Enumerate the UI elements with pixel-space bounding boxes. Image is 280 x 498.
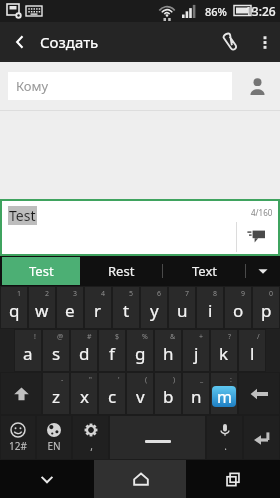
button[interactable]: EN [37, 416, 71, 459]
staticText: + [199, 332, 204, 342]
button[interactable]: + [183, 330, 209, 371]
button[interactable]: & [155, 330, 181, 371]
button[interactable]: 12# [1, 416, 35, 459]
staticText: v [136, 385, 145, 408]
staticText: u [177, 299, 188, 322]
staticText: , [90, 439, 93, 453]
button[interactable]: @ [43, 330, 69, 371]
button[interactable]: 6 [141, 287, 167, 328]
button[interactable]: / [239, 330, 265, 371]
staticText: Rest [108, 262, 135, 280]
button[interactable]: ! [15, 330, 41, 371]
staticText: g [135, 342, 146, 365]
staticText: Test [29, 262, 54, 280]
staticText: h [163, 342, 174, 365]
staticText: $ [115, 332, 120, 342]
staticText: s [52, 342, 61, 365]
staticText: q [9, 299, 20, 322]
button[interactable]: Кому [8, 72, 232, 100]
button[interactable]: Space [110, 416, 205, 459]
button[interactable]: Test [2, 201, 278, 254]
staticText: r [94, 299, 102, 322]
button[interactable]: _ [183, 373, 209, 414]
staticText: j [194, 342, 199, 365]
staticText: a [23, 342, 33, 365]
button[interactable]: More suggestions [246, 256, 280, 286]
button[interactable]: Choose contact [242, 71, 272, 101]
staticText: b [163, 385, 174, 408]
staticText: l [250, 342, 255, 365]
staticText: _ [200, 375, 204, 385]
button[interactable]: Send message [242, 220, 272, 250]
staticText: 8 [213, 289, 218, 299]
staticText: k [219, 342, 229, 365]
button[interactable]: 0 [253, 287, 279, 328]
button[interactable]: Text [163, 256, 246, 286]
staticText: Text [192, 262, 217, 280]
staticText: / [257, 332, 260, 342]
staticText: : [230, 375, 232, 385]
button[interactable]: 2 [29, 287, 55, 328]
button[interactable]: Backspace [239, 373, 279, 414]
staticText: Кому [16, 77, 49, 95]
staticText: 86% [205, 4, 227, 19]
staticText: w [35, 299, 49, 322]
button[interactable]: Hide keyboard [0, 460, 94, 498]
button[interactable]: ' [99, 373, 125, 414]
staticText: 13:26 [245, 3, 276, 19]
button[interactable]: 3 [57, 287, 83, 328]
button[interactable]: Enter [244, 416, 279, 459]
button[interactable]: , [73, 416, 108, 459]
button[interactable]: " [71, 373, 97, 414]
button[interactable]: Test [2, 257, 80, 285]
staticText: . [224, 439, 227, 453]
staticText: & [170, 332, 176, 342]
staticText: 7 [185, 289, 190, 299]
button[interactable]: 1 [1, 287, 27, 328]
button[interactable]: $ [99, 330, 125, 371]
button[interactable]: Attach [210, 22, 250, 62]
staticText: " [89, 375, 92, 385]
button[interactable]: 8 [197, 287, 223, 328]
staticText: x [80, 385, 89, 408]
staticText: ) [173, 375, 176, 385]
staticText: # [87, 332, 92, 342]
staticText: EN [47, 439, 61, 453]
button[interactable]: Shift [1, 373, 41, 414]
button[interactable]: # [71, 330, 97, 371]
staticText: ! [34, 332, 36, 342]
button[interactable]: Home [94, 460, 187, 498]
staticText: d [79, 342, 90, 365]
button[interactable]: Rest [80, 256, 163, 286]
staticText: Test [9, 206, 36, 225]
button[interactable]: 9 [225, 287, 251, 328]
staticText: ' [118, 375, 120, 385]
staticText: 6 [157, 289, 162, 299]
button[interactable]: ( [127, 373, 153, 414]
staticText: 12# [9, 439, 27, 453]
button[interactable]: More options [250, 22, 280, 62]
staticText: % [142, 332, 148, 342]
button[interactable]: 5 [113, 287, 139, 328]
button[interactable]: Recent apps [187, 460, 280, 498]
staticText: ? [228, 332, 232, 342]
button[interactable]: . [207, 416, 242, 459]
button[interactable]: % [127, 330, 153, 371]
button[interactable]: 4 [85, 287, 111, 328]
staticText: m [217, 386, 232, 407]
staticText: 5 [129, 289, 134, 299]
button[interactable]: - [43, 373, 69, 414]
staticText: 1 [17, 289, 22, 299]
button[interactable]: Back [0, 22, 40, 62]
staticText: 0 [269, 289, 274, 299]
staticText: y [150, 299, 159, 322]
button[interactable]: 7 [169, 287, 195, 328]
button[interactable]: ? [211, 330, 237, 371]
button[interactable]: : [211, 373, 237, 414]
staticText: z [52, 385, 60, 408]
button[interactable]: ) [155, 373, 181, 414]
staticText: f [109, 342, 115, 365]
staticText: Создать [40, 32, 99, 52]
staticText: 4/160 [251, 207, 273, 218]
staticText: ( [145, 375, 148, 385]
